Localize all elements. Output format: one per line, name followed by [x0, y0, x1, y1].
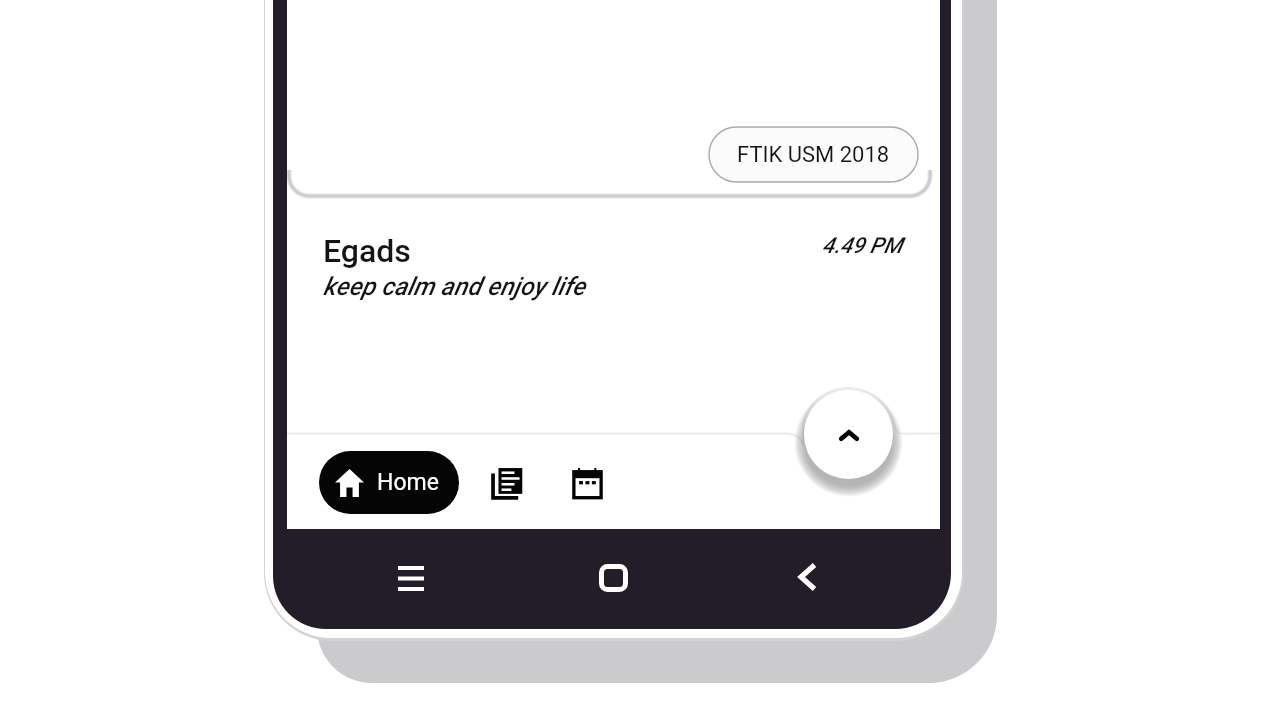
staticText: Home	[377, 469, 439, 496]
button[interactable]: Notes	[478, 451, 538, 514]
button[interactable]: FTIK USM 2018	[709, 127, 918, 182]
staticText: FTIK USM 2018	[737, 142, 890, 168]
button[interactable]: Home	[319, 451, 459, 514]
staticText: keep calm and enjoy life	[323, 272, 585, 301]
button[interactable]: Home	[599, 564, 628, 592]
staticText: Egads	[323, 232, 411, 270]
button[interactable]: Back	[798, 562, 816, 592]
staticText: 4.49 PM	[822, 233, 903, 259]
button[interactable]: Menu	[398, 566, 424, 591]
button[interactable]: Calendar	[557, 451, 617, 514]
button[interactable]: Scroll to top	[804, 390, 893, 479]
